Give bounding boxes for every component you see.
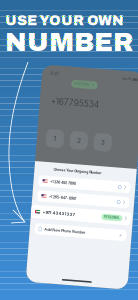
staticText: 2 (74, 137, 78, 145)
staticText: +971 43431337 (45, 213, 77, 218)
staticText: 3 (98, 137, 102, 145)
button[interactable]: +1 265-647-8901 (34, 194, 136, 205)
staticText: Choose Your Outgoing Number (53, 170, 101, 174)
staticText: + (123, 229, 127, 236)
staticText: +1 336 492 7890 (50, 182, 76, 186)
staticText: +1 265-647-8901 (50, 197, 77, 201)
button[interactable]: +1 336 492 7890 (34, 179, 136, 190)
staticText: PERSONAL (107, 214, 123, 217)
staticText: NUMBER (5, 28, 133, 56)
button[interactable]: +971 43431337 (34, 209, 136, 222)
staticText: USE YOUR OWN (5, 13, 124, 28)
staticText: Add New Phone Number (48, 230, 89, 234)
staticText: PERSONAL (67, 83, 83, 87)
staticText: +167795534 (45, 99, 93, 109)
button[interactable]: Add New Phone Number (34, 227, 136, 238)
